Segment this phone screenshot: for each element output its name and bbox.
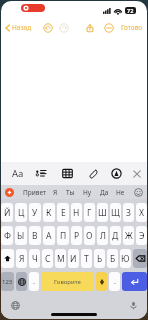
- button[interactable]: Готово: [121, 23, 143, 32]
- button[interactable]: Р: [71, 226, 82, 245]
- button[interactable]: Н: [71, 203, 82, 222]
- staticText: Aa: [12, 167, 24, 180]
- staticText: О: [86, 230, 93, 242]
- button[interactable]: Attach: [88, 168, 99, 179]
- staticText: Щ: [111, 207, 120, 219]
- staticText: Ь: [97, 253, 103, 265]
- button[interactable]: Emoji: [134, 188, 143, 197]
- staticText: Назад: [12, 23, 32, 32]
- staticText: Х: [139, 207, 144, 219]
- staticText: Л: [100, 230, 106, 242]
- button[interactable]: Я: [16, 249, 27, 268]
- staticText: Я: [53, 188, 58, 197]
- button[interactable]: .: [109, 272, 120, 291]
- button[interactable]: Б: [107, 249, 118, 268]
- staticText: Да: [100, 188, 109, 197]
- staticText: С: [45, 253, 51, 265]
- button[interactable]: Backspace: [133, 249, 147, 268]
- button[interactable]: Ы: [15, 226, 27, 245]
- staticText: .: [114, 277, 116, 287]
- button[interactable]: .: [29, 272, 39, 291]
- staticText: Я: [19, 253, 25, 265]
- staticText: .: [33, 277, 35, 287]
- button[interactable]: Shift: [1, 249, 14, 268]
- staticText: В: [32, 230, 38, 242]
- staticText: Н: [73, 207, 80, 219]
- button[interactable]: О: [84, 226, 95, 245]
- staticText: У: [32, 207, 38, 219]
- button[interactable]: Д: [110, 226, 121, 245]
- button[interactable]: С: [42, 249, 53, 268]
- button[interactable]: Ну: [74, 186, 100, 199]
- staticText: Ч: [32, 253, 38, 265]
- staticText: Говорите: [54, 278, 81, 286]
- button[interactable]: Ш: [97, 203, 108, 222]
- button[interactable]: Ф: [1, 226, 13, 245]
- button[interactable]: У: [29, 203, 41, 222]
- button[interactable]: Назад: [5, 23, 32, 32]
- button[interactable]: Я: [42, 186, 68, 199]
- staticText: З: [126, 207, 131, 219]
- button[interactable]: Voice input: [96, 272, 107, 291]
- button[interactable]: Emoji keyboard: [16, 272, 27, 291]
- staticText: М: [57, 253, 65, 265]
- button[interactable]: Щ: [110, 203, 121, 222]
- button[interactable]: Привет: [21, 186, 47, 199]
- button[interactable]: М: [55, 249, 66, 268]
- button[interactable]: Х: [136, 203, 147, 222]
- staticText: 72: [127, 7, 134, 14]
- button[interactable]: 123: [1, 272, 14, 291]
- button[interactable]: Undo: [43, 23, 53, 33]
- button[interactable]: Л: [97, 226, 108, 245]
- button[interactable]: Ч: [29, 249, 40, 268]
- button[interactable]: Redo: [59, 23, 69, 33]
- staticText: К: [46, 207, 52, 219]
- staticText: А: [46, 230, 52, 242]
- staticText: Д: [112, 230, 119, 242]
- staticText: Ты: [66, 188, 75, 197]
- staticText: Ц: [18, 207, 25, 219]
- button[interactable]: А: [43, 226, 55, 245]
- button[interactable]: П: [57, 226, 69, 245]
- staticText: Привет: [23, 188, 46, 197]
- button[interactable]: Language: [11, 301, 20, 310]
- button[interactable]: Camera: [111, 168, 122, 179]
- staticText: И: [70, 253, 77, 265]
- button[interactable]: Да: [91, 186, 117, 199]
- staticText: П: [60, 230, 67, 242]
- button[interactable]: К: [43, 203, 55, 222]
- button[interactable]: Aa: [12, 167, 24, 180]
- staticText: Б: [110, 253, 116, 265]
- button[interactable]: Не: [107, 186, 133, 199]
- button[interactable]: З: [123, 203, 134, 222]
- staticText: Ы: [17, 230, 25, 242]
- button[interactable]: Dictate: [129, 301, 138, 310]
- button[interactable]: Э: [136, 226, 147, 245]
- button[interactable]: В: [29, 226, 41, 245]
- staticText: Ш: [98, 207, 107, 219]
- button[interactable]: Т: [81, 249, 92, 268]
- button[interactable]: List style: [36, 168, 47, 179]
- button[interactable]: Ж: [123, 226, 134, 245]
- button[interactable]: Г: [84, 203, 95, 222]
- staticText: Ф: [4, 230, 11, 242]
- button[interactable]: Table: [62, 168, 73, 179]
- button[interactable]: Smart reply: [5, 188, 14, 197]
- button[interactable]: Close: [132, 169, 142, 179]
- button[interactable]: Ь: [94, 249, 105, 268]
- button[interactable]: Е: [57, 203, 69, 222]
- button[interactable]: Ц: [15, 203, 27, 222]
- button[interactable]: More options: [104, 23, 114, 33]
- staticText: Ж: [125, 230, 133, 242]
- staticText: Р: [74, 230, 80, 242]
- button[interactable]: Return: [122, 272, 147, 291]
- button[interactable]: Говорите: [41, 272, 94, 291]
- staticText: Т: [84, 253, 89, 265]
- button[interactable]: И: [68, 249, 79, 268]
- button[interactable]: Й: [1, 203, 13, 222]
- staticText: Г: [87, 207, 92, 219]
- button[interactable]: Ты: [57, 186, 83, 199]
- staticText: Э: [139, 230, 145, 242]
- button[interactable]: Ю: [120, 249, 131, 268]
- button[interactable]: Share: [85, 23, 95, 33]
